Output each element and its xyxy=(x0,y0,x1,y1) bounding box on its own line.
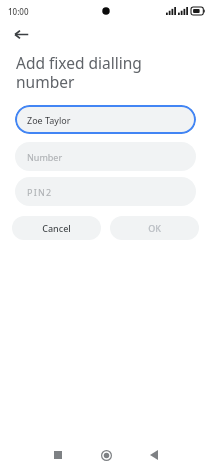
staticText: 10:00 xyxy=(8,6,29,17)
staticText: Cancel xyxy=(42,222,71,234)
button[interactable]: Home xyxy=(91,440,121,470)
staticText: Number xyxy=(27,151,63,163)
staticText: Zoe Taylor xyxy=(27,114,71,126)
staticText: PIN2 xyxy=(27,186,53,198)
button[interactable]: Recent apps xyxy=(43,440,73,470)
button[interactable]: PIN2 xyxy=(15,177,196,206)
button[interactable]: Number xyxy=(15,142,196,171)
button[interactable]: Back xyxy=(8,22,34,46)
button[interactable]: Cancel xyxy=(12,216,101,240)
button[interactable]: Back xyxy=(139,440,169,470)
staticText: OK xyxy=(148,222,161,234)
button[interactable]: OK xyxy=(110,216,199,240)
button[interactable]: Zoe Taylor xyxy=(15,105,196,134)
staticText: Add fixed dialling number xyxy=(16,52,195,92)
